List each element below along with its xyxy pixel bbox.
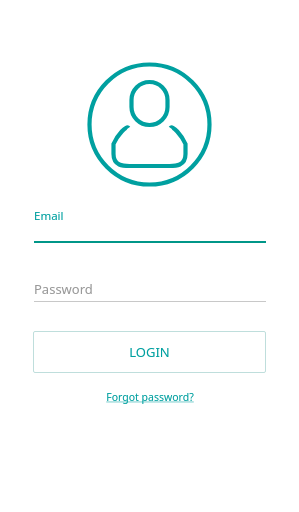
button[interactable]: Password [34, 280, 266, 302]
staticText: Email [34, 208, 64, 224]
button[interactable]: Forgot password? [100, 388, 199, 406]
staticText: LOGIN [129, 343, 170, 361]
button[interactable]: Email [34, 208, 266, 243]
staticText: Forgot password? [106, 390, 194, 404]
button[interactable]: LOGIN [33, 331, 266, 373]
staticText: Password [34, 280, 93, 298]
